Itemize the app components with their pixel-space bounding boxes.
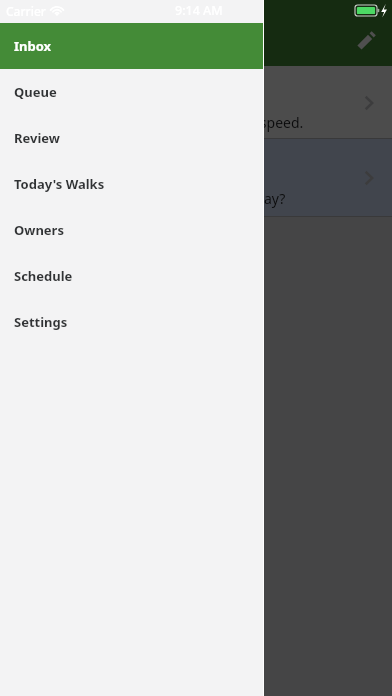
button[interactable]: Marcy Thompson	[0, 66, 392, 139]
button[interactable]: Settings	[0, 299, 264, 345]
button[interactable]: Compose message	[348, 22, 384, 58]
staticText: Review	[14, 129, 60, 147]
staticText: Schedule	[14, 267, 73, 285]
staticText: Inbox	[14, 37, 52, 55]
button[interactable]: Schedule	[0, 253, 264, 299]
staticText: Owners	[14, 221, 64, 239]
button[interactable]: Today's Walks	[0, 161, 264, 207]
button[interactable]: Inbox	[0, 23, 264, 69]
staticText: Today's Walks	[14, 175, 105, 193]
button[interactable]: Daniel Ruiz	[0, 139, 392, 217]
staticText: Marcy Thompson	[14, 75, 130, 94]
staticText: 9:14 AM	[175, 2, 223, 19]
staticText: Hi! Could you please take Bella out toda…	[11, 189, 286, 208]
staticText: Queue	[14, 83, 57, 101]
staticText: Thanks for all your help --- Rex is up t…	[5, 113, 304, 132]
button[interactable]: Queue	[0, 69, 264, 115]
staticText: Carrier	[6, 3, 46, 19]
staticText: Yesterday · 2 attachments	[14, 128, 141, 142]
button[interactable]: Owners	[0, 207, 264, 253]
staticText: Settings	[14, 313, 68, 331]
button[interactable]: Review	[0, 115, 264, 161]
